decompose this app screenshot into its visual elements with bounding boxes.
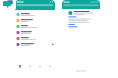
button[interactable] bbox=[15, 23, 55, 29]
button[interactable]: Calls bbox=[25, 63, 35, 70]
button[interactable] bbox=[15, 11, 55, 17]
button[interactable]: Contacts bbox=[35, 63, 45, 70]
button[interactable] bbox=[15, 29, 55, 35]
button[interactable] bbox=[15, 35, 55, 41]
button[interactable] bbox=[15, 41, 55, 47]
button[interactable]: Settings bbox=[45, 63, 55, 70]
button[interactable]: Chats bbox=[15, 63, 25, 70]
button[interactable] bbox=[15, 17, 55, 23]
